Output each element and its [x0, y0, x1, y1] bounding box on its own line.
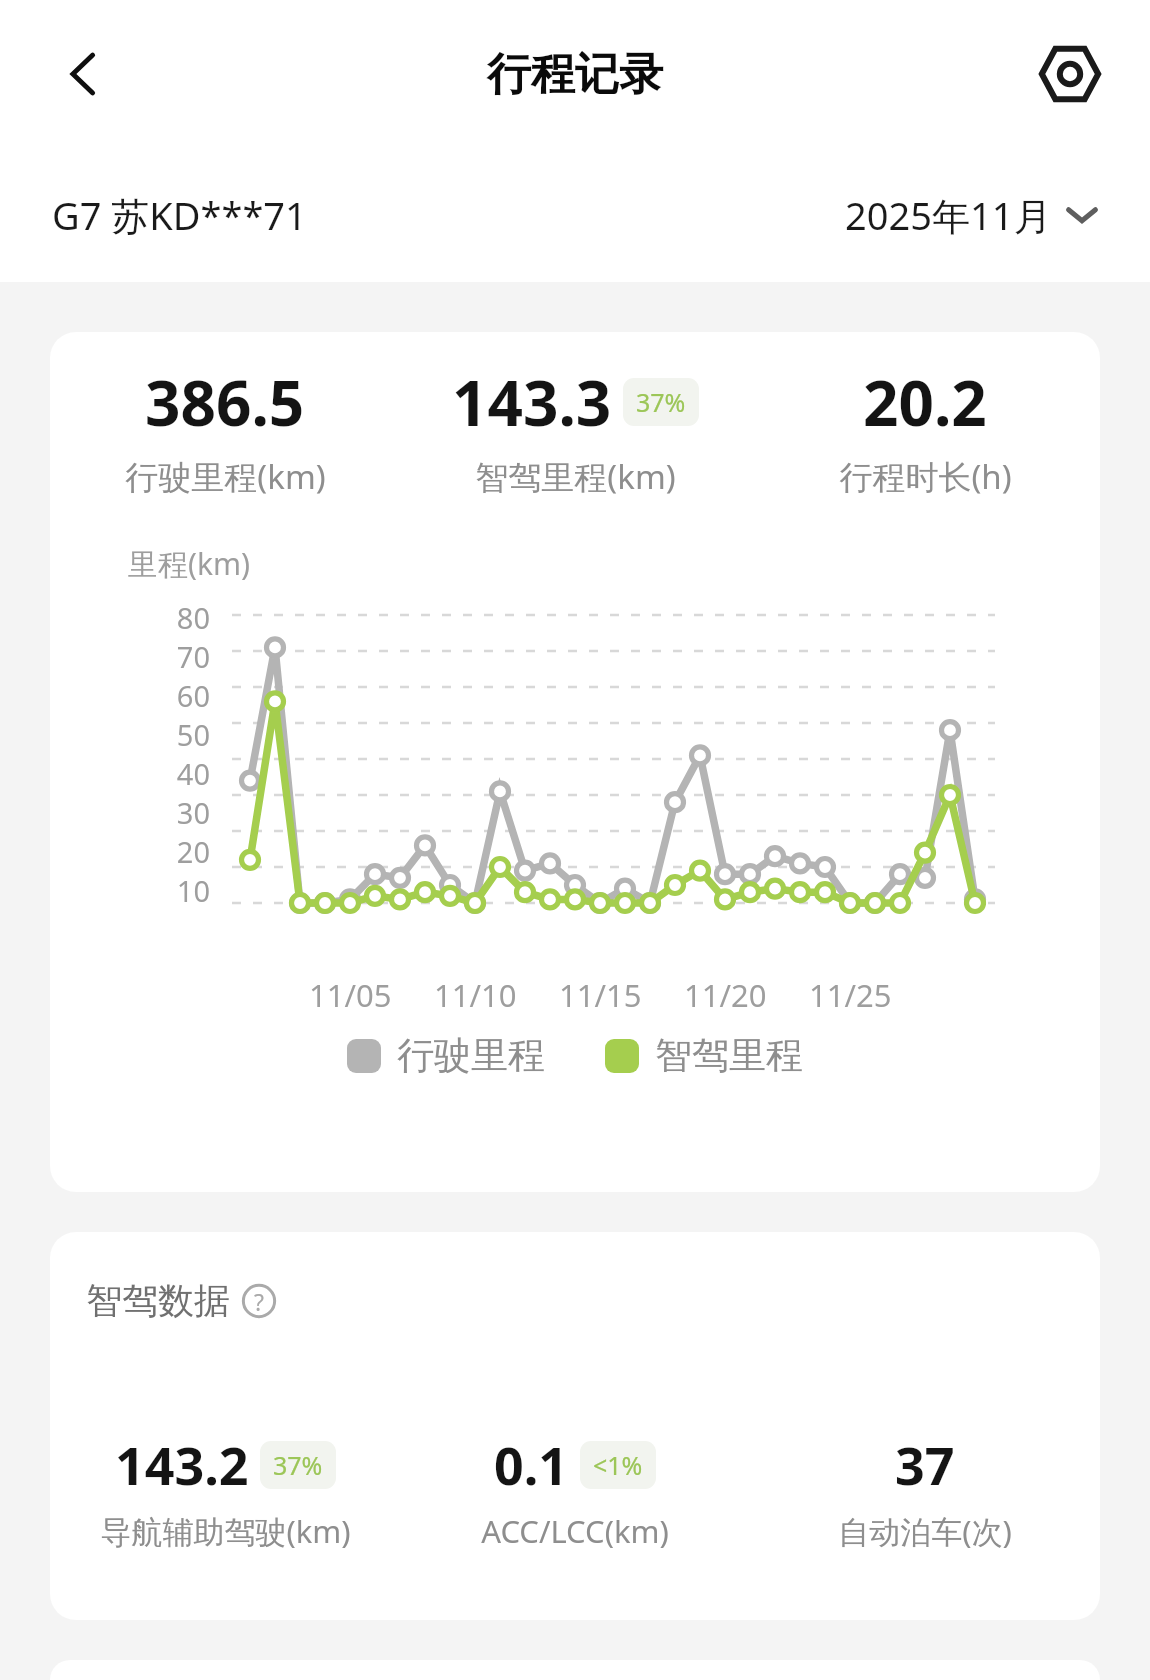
staticText: 11/20 [684, 974, 767, 1024]
staticText: ? [254, 1286, 264, 1317]
button[interactable]: 2025年11月 [845, 189, 1098, 241]
button[interactable]: 0.1 [400, 1429, 750, 1552]
staticText: 70 [146, 637, 210, 676]
staticText: 143.3 [452, 360, 612, 444]
staticText: 行驶里程 [397, 1032, 545, 1079]
staticText: <1% [593, 1448, 643, 1482]
staticText: 智驾里程(km) [475, 454, 676, 499]
staticText: 20.2 [863, 360, 987, 444]
staticText: 行程时长(h) [839, 454, 1012, 499]
staticText: 10 [146, 871, 210, 910]
staticText: 60 [146, 676, 210, 715]
staticText: 2025年11月 [845, 189, 1052, 241]
staticText: 143.2 [115, 1429, 249, 1500]
staticText: ACC/LCC(km) [481, 1510, 669, 1552]
staticText: 11/10 [434, 974, 517, 1024]
staticText: 里程(km) [128, 543, 251, 584]
button[interactable]: 行驶里程 [347, 1032, 545, 1079]
staticText: 11/25 [809, 974, 892, 1024]
button[interactable]: 20.2 [750, 360, 1100, 499]
button[interactable]: Settings [1030, 34, 1110, 114]
staticText: 行驶里程(km) [125, 454, 326, 499]
staticText: 导航辅助驾驶(km) [100, 1510, 351, 1552]
button[interactable]: Back [46, 37, 120, 111]
button[interactable]: 智驾里程 [605, 1032, 803, 1079]
button[interactable]: 37 [750, 1429, 1100, 1552]
staticText: 40 [146, 754, 210, 793]
staticText: 30 [146, 793, 210, 832]
button[interactable]: 386.5 [50, 360, 400, 499]
staticText: 0.1 [494, 1429, 569, 1500]
staticText: 智驾里程 [655, 1032, 803, 1079]
staticText: 80 [146, 598, 210, 637]
staticText: 37% [273, 1448, 323, 1482]
button[interactable]: G7 苏KD***71 [52, 189, 307, 241]
staticText: 37% [636, 385, 686, 419]
staticText: 37 [895, 1429, 955, 1500]
button[interactable]: 智驾数据 [86, 1278, 276, 1323]
staticText: 11/15 [559, 974, 642, 1024]
button[interactable]: 143.2 [50, 1429, 400, 1552]
staticText: 自动泊车(次) [838, 1510, 1012, 1552]
staticText: 50 [146, 715, 210, 754]
staticText: 11/05 [309, 974, 392, 1024]
staticText: 智驾数据 [86, 1278, 230, 1323]
staticText: 386.5 [145, 360, 305, 444]
staticText: 20 [146, 832, 210, 871]
staticText: 行程记录 [487, 47, 663, 102]
button[interactable]: 143.3 [400, 360, 750, 499]
